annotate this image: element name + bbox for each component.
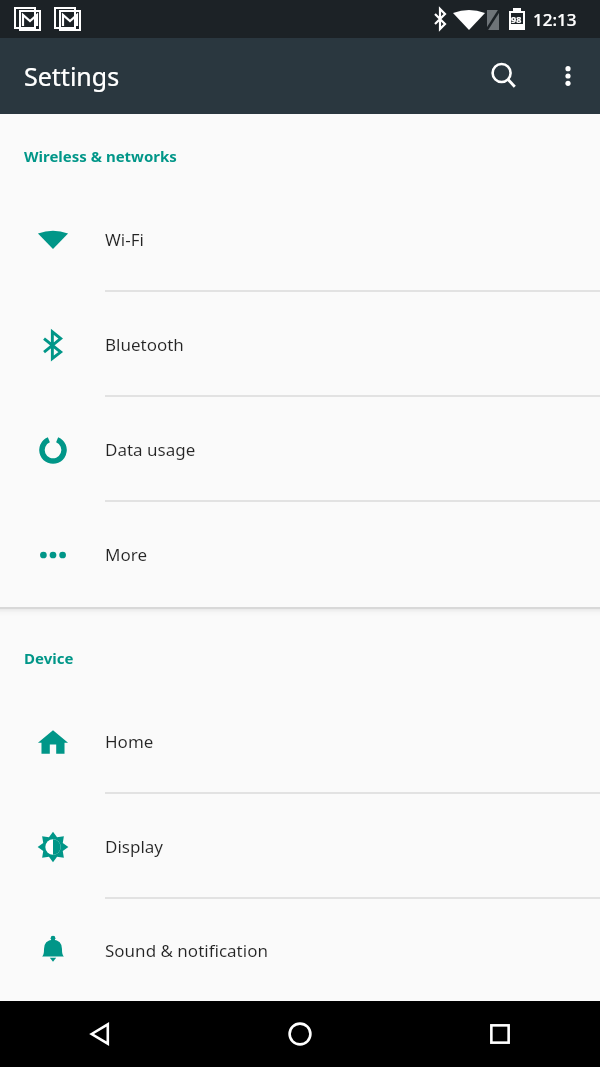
staticText: 12:13 bbox=[533, 8, 577, 31]
button[interactable]: More bbox=[0, 502, 600, 607]
button[interactable]: Home bbox=[0, 689, 600, 794]
button[interactable]: Home bbox=[200, 1001, 400, 1067]
staticText: More bbox=[105, 543, 147, 566]
button[interactable]: Wi-Fi bbox=[0, 187, 600, 292]
staticText: Data usage bbox=[105, 438, 196, 461]
staticText: Wireless & networks bbox=[24, 146, 177, 166]
button[interactable]: Sound & notification bbox=[0, 899, 600, 1001]
staticText: Home bbox=[105, 730, 154, 753]
button[interactable]: Back bbox=[0, 1001, 200, 1067]
button[interactable]: More options bbox=[542, 50, 594, 102]
button[interactable]: Search bbox=[478, 50, 530, 102]
staticText: Bluetooth bbox=[105, 333, 184, 356]
staticText: Settings bbox=[24, 59, 120, 93]
button[interactable]: Data usage bbox=[0, 397, 600, 502]
staticText: 98 bbox=[511, 13, 522, 25]
staticText: Wi-Fi bbox=[105, 228, 144, 251]
staticText: Device bbox=[24, 648, 74, 668]
staticText: Sound & notification bbox=[105, 939, 268, 962]
staticText: Display bbox=[105, 835, 163, 858]
button[interactable]: Display bbox=[0, 794, 600, 899]
button[interactable]: Recent apps bbox=[400, 1001, 600, 1067]
button[interactable]: Bluetooth bbox=[0, 292, 600, 397]
